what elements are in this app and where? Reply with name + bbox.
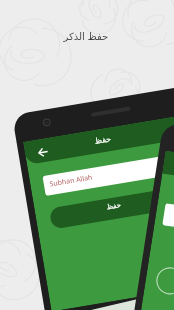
- button[interactable]: [0, 0, 174, 310]
